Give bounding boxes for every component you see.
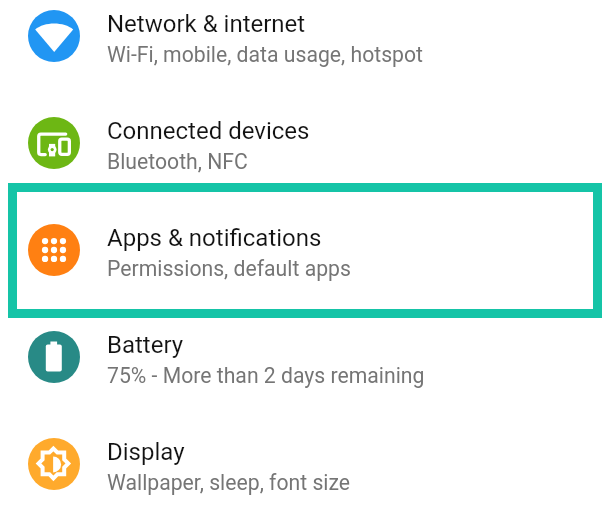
staticText: Display	[107, 438, 185, 466]
other: Battery icon	[28, 331, 80, 383]
staticText: Wi-Fi, mobile, data usage, hotspot	[107, 42, 424, 67]
button[interactable]: Network and internet icon	[0, 0, 613, 90]
button[interactable]: Display icon	[0, 411, 613, 505]
other: Connected devices icon	[28, 117, 80, 169]
button[interactable]: Connected devices icon	[0, 90, 613, 197]
other: Display icon	[28, 438, 80, 490]
staticText: Wallpaper, sleep, font size	[107, 470, 351, 495]
staticText: Bluetooth, NFC	[107, 149, 248, 174]
other: Network and internet icon	[28, 10, 80, 62]
staticText: Connected devices	[107, 117, 310, 145]
other: Apps and notifications icon	[28, 224, 80, 276]
staticText: Network & internet	[107, 10, 306, 38]
staticText: Battery	[107, 331, 184, 359]
staticText: 75% - More than 2 days remaining	[107, 363, 425, 388]
staticText: Permissions, default apps	[107, 256, 351, 281]
button[interactable]: Apps and notifications icon	[0, 197, 613, 304]
button[interactable]: Battery icon	[0, 304, 613, 411]
staticText: Apps & notifications	[107, 224, 322, 252]
